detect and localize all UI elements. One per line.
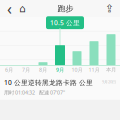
- staticText: 跑步: [57, 4, 73, 13]
- staticText: 8月: [39, 66, 47, 73]
- staticText: 用时 01:04:32: [4, 89, 35, 96]
- staticText: ⌂: [19, 2, 26, 14]
- staticText: 10月: [71, 66, 82, 73]
- button[interactable]: Share: [102, 0, 117, 16]
- staticText: 10 公里逆转黑龙路卡路 公里: [4, 78, 93, 87]
- staticText: ‹: [7, 0, 12, 19]
- staticText: ⇪: [105, 2, 114, 14]
- staticText: 9月: [56, 66, 64, 73]
- staticText: 6月: [5, 66, 13, 73]
- staticText: 7月: [22, 66, 30, 73]
- button[interactable]: Home: [16, 0, 29, 16]
- staticText: 本月: [106, 66, 116, 73]
- button[interactable]: 10 公里逆转黑龙路卡路 公里: [0, 74, 120, 100]
- staticText: 11月: [88, 66, 99, 73]
- button[interactable]: Back: [3, 0, 16, 16]
- staticText: 10.5 公里: [50, 18, 80, 27]
- staticText: 9月20日: [102, 79, 116, 84]
- staticText: 配速 07'07": [39, 89, 65, 96]
